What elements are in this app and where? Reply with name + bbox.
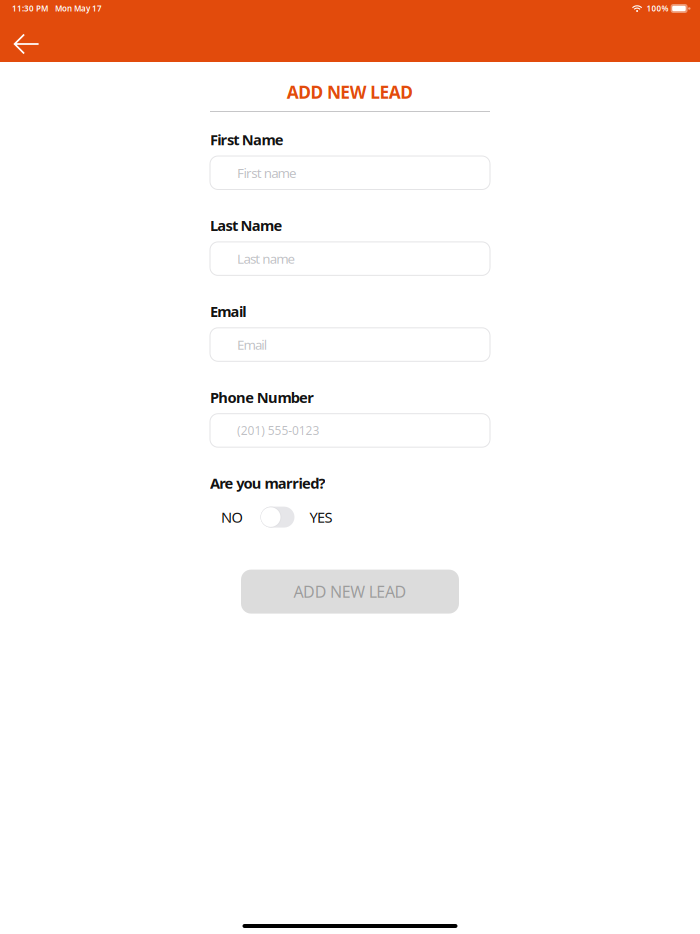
button[interactable]: (201) 555-0123 — [210, 414, 490, 447]
staticText: Email — [237, 336, 267, 353]
staticText: NO — [221, 507, 242, 527]
staticText: First name — [237, 164, 297, 182]
button[interactable]: Email — [210, 328, 490, 361]
staticText: ADD NEW LEAD — [287, 80, 413, 103]
staticText: Email — [210, 302, 246, 321]
button[interactable]: First name — [210, 156, 490, 189]
staticText: 11:30 PM — [12, 3, 48, 14]
staticText: Phone Number — [210, 387, 314, 407]
staticText: Last Name — [210, 216, 282, 235]
staticText: Mon May 17 — [55, 3, 102, 14]
button[interactable]: Married — [260, 507, 294, 528]
staticText: Last name — [237, 250, 296, 267]
button[interactable]: Back — [0, 17, 50, 61]
button[interactable]: ADD NEW LEAD — [241, 570, 459, 614]
staticText: YES — [309, 507, 332, 527]
staticText: (201) 555-0123 — [237, 422, 319, 438]
staticText: ADD NEW LEAD — [293, 581, 407, 602]
staticText: 100% — [647, 3, 669, 14]
staticText: First Name — [210, 130, 284, 149]
button[interactable]: Last name — [210, 242, 490, 275]
staticText: Are you married? — [210, 473, 325, 493]
